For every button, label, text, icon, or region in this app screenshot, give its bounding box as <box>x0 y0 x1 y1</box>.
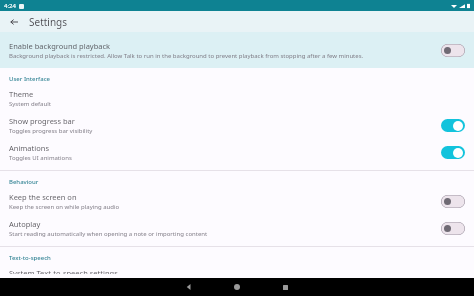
staticText: Behaviour <box>9 178 39 186</box>
button[interactable]: Enable background playback <box>0 32 474 68</box>
button[interactable]: Recents <box>272 278 298 296</box>
staticText: User Interface <box>9 75 51 83</box>
button[interactable]: Back <box>176 278 202 296</box>
button[interactable]: Animations <box>0 139 474 166</box>
staticText: Toggles UI animations <box>9 154 72 162</box>
button[interactable]: Show progress bar <box>0 112 474 139</box>
staticText: Animations <box>9 143 49 153</box>
staticText: Theme <box>9 89 34 99</box>
staticText: Keep the screen on while playing audio <box>9 203 120 211</box>
button[interactable]: Toggle on <box>441 119 465 132</box>
button[interactable]: Home <box>224 278 250 296</box>
button[interactable]: Autoplay <box>0 215 474 242</box>
button[interactable]: Theme <box>0 85 474 112</box>
button[interactable]: Toggle off <box>441 44 465 57</box>
button[interactable]: Keep the screen on <box>0 188 474 215</box>
staticText: Keep the screen on <box>9 192 77 202</box>
staticText: Toggles progress bar visibility <box>9 127 93 135</box>
staticText: Autoplay <box>9 219 41 229</box>
staticText: Settings <box>29 15 68 29</box>
staticText: Text-to-speech <box>9 254 51 262</box>
staticText: System default <box>9 100 51 108</box>
button[interactable]: Back <box>8 16 20 28</box>
staticText: 4:24 <box>4 2 16 10</box>
staticText: Enable background playback <box>9 41 111 51</box>
button[interactable]: Toggle off <box>441 222 465 235</box>
staticText: Background playback is restricted. Allow… <box>9 52 364 60</box>
staticText: Start reading automatically when opening… <box>9 230 208 238</box>
button[interactable]: System Text-to-speech settings <box>0 264 474 278</box>
button[interactable]: Toggle off <box>441 195 465 208</box>
staticText: System Text-to-speech settings <box>9 268 118 274</box>
staticText: Show progress bar <box>9 116 75 126</box>
button[interactable]: Toggle on <box>441 146 465 159</box>
